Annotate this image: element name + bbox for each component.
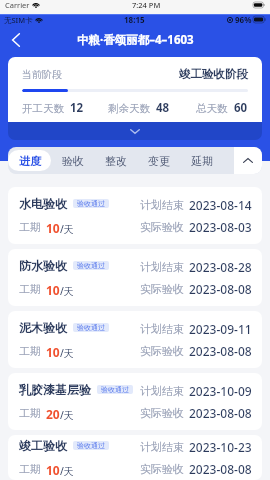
button[interactable]: 整改	[94, 150, 137, 171]
staticText: /天	[60, 222, 74, 236]
staticText: 乳胶漆基层验	[19, 382, 91, 397]
staticText: 水电验收	[19, 196, 67, 211]
button[interactable]: 延期	[180, 150, 223, 171]
staticText: 12	[70, 100, 84, 116]
button[interactable]: Collapse	[234, 147, 262, 174]
staticText: 10	[46, 344, 60, 360]
staticText: 总天数	[196, 102, 228, 115]
button[interactable]: 进度	[8, 150, 51, 171]
staticText: /天	[60, 346, 74, 360]
staticText: 10	[46, 282, 60, 298]
button[interactable]: 防水验收	[8, 249, 262, 306]
staticText: 中粮·香颂丽都–4–1603	[77, 32, 194, 48]
staticText: 竣工验收阶段	[179, 67, 248, 81]
staticText: 验收	[62, 154, 84, 168]
staticText: 工期	[19, 407, 41, 421]
staticText: 60	[234, 100, 248, 116]
staticText: 计划结束	[140, 260, 184, 274]
button[interactable]: 变更	[137, 150, 180, 171]
staticText: 竣工验收	[19, 438, 67, 453]
staticText: 计划结束	[140, 198, 184, 212]
staticText: /天	[60, 464, 74, 478]
staticText: 10	[46, 462, 60, 478]
staticText: 计划结束	[140, 440, 184, 454]
staticText: /天	[60, 408, 74, 422]
staticText: 泥木验收	[19, 320, 67, 335]
staticText: 实际验收	[140, 282, 184, 296]
staticText: 2023-08-14	[189, 197, 252, 213]
staticText: 2023-08-28	[189, 259, 252, 275]
staticText: 实际验收	[140, 220, 184, 234]
staticText: 2023-08-08	[189, 281, 252, 297]
staticText: 开工天数	[22, 102, 64, 115]
staticText: 工期	[19, 345, 41, 359]
staticText: 48	[156, 100, 170, 116]
staticText: 20	[46, 406, 60, 422]
button[interactable]: 水电验收	[8, 187, 262, 244]
staticText: 2023-08-03	[189, 219, 252, 235]
staticText: 验收通过	[77, 199, 105, 208]
staticText: 变更	[148, 154, 170, 168]
staticText: 工期	[19, 283, 41, 297]
staticText: 验收通过	[77, 261, 105, 270]
button[interactable]: Expand details	[8, 122, 262, 140]
staticText: 2023-08-08	[189, 343, 252, 359]
staticText: 7:24 PM	[132, 0, 161, 10]
staticText: 2023-08-08	[189, 461, 252, 477]
staticText: 剩余天数	[108, 102, 150, 115]
staticText: Carrier	[5, 0, 30, 10]
staticText: 2023-08-08	[189, 405, 252, 421]
staticText: 验收通过	[77, 441, 105, 450]
staticText: 实际验收	[140, 344, 184, 358]
staticText: 当前阶段	[22, 68, 62, 81]
staticText: 2023-10-23	[189, 439, 252, 455]
staticText: 防水验收	[19, 258, 67, 273]
staticText: 计划结束	[140, 384, 184, 398]
button[interactable]: 验收	[51, 150, 94, 171]
staticText: 验收通过	[77, 323, 105, 332]
staticText: 实际验收	[140, 406, 184, 420]
staticText: /天	[60, 284, 74, 298]
staticText: 10	[46, 220, 60, 236]
button[interactable]: Back	[0, 28, 32, 52]
staticText: 实际验收	[140, 462, 184, 476]
staticText: 2023-09-11	[189, 321, 252, 337]
staticText: 进度	[19, 154, 41, 168]
staticText: 18:15	[124, 14, 145, 25]
staticText: 工期	[19, 463, 41, 477]
staticText: 2023-10-09	[189, 383, 252, 399]
staticText: 无SIM卡	[4, 15, 33, 25]
staticText: 96%	[235, 14, 252, 25]
button[interactable]: 乳胶漆基层验	[8, 373, 262, 430]
staticText: 延期	[191, 154, 213, 168]
staticText: 整改	[105, 154, 127, 168]
staticText: 验收通过	[101, 385, 129, 394]
button[interactable]: 泥木验收	[8, 311, 262, 368]
staticText: 计划结束	[140, 322, 184, 336]
button[interactable]: 竣工验收	[8, 435, 262, 480]
staticText: 工期	[19, 221, 41, 235]
